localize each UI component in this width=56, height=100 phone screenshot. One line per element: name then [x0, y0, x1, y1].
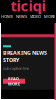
staticText: HOME	[1, 14, 13, 19]
button[interactable]: NEWS	[16, 14, 27, 19]
staticText: NEWS	[16, 14, 27, 19]
staticText: ticiqi	[10, 0, 45, 15]
button[interactable]: MORE	[44, 14, 55, 19]
button[interactable]: READ MORE	[3, 79, 25, 84]
button[interactable]: VIDEO	[30, 14, 41, 19]
staticText: BREAKING NEWS STORY	[3, 49, 47, 63]
staticText: MORE	[44, 14, 55, 19]
staticText: sub caption line	[3, 65, 29, 71]
staticText: READ MORE	[8, 76, 20, 86]
staticText: VIDEO	[30, 14, 41, 19]
button[interactable]: HOME	[1, 14, 13, 19]
